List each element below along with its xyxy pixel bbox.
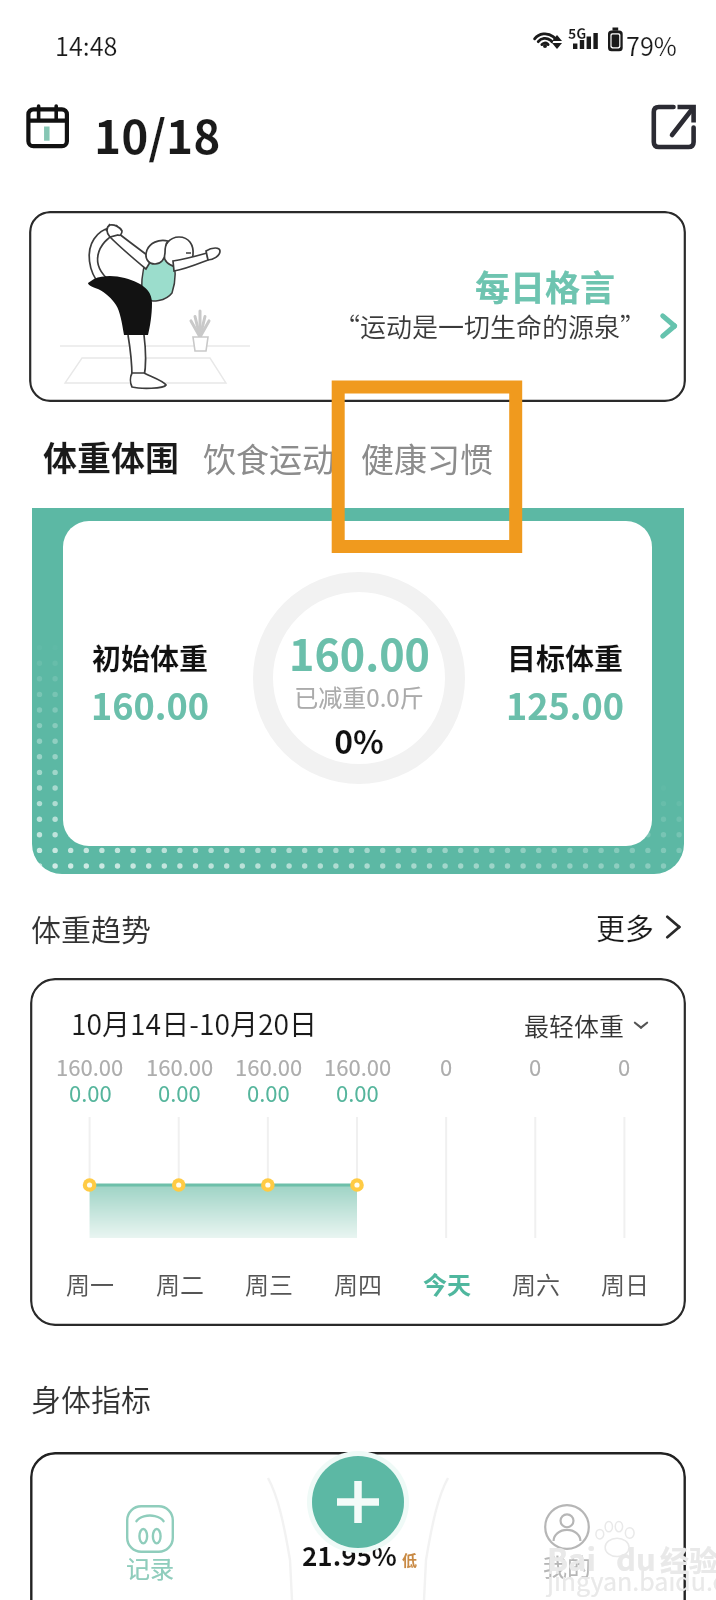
button[interactable]: 记录 xyxy=(126,1505,174,1588)
button[interactable]: 最轻体重 xyxy=(524,1007,649,1043)
staticText: 周一 xyxy=(66,1266,114,1301)
staticText: 10/18 xyxy=(94,101,221,168)
button[interactable]: Profile xyxy=(543,1503,591,1586)
staticText: 低 xyxy=(402,1549,418,1571)
staticText: “运动是一切生命的源泉” xyxy=(334,307,647,345)
staticText: 周三 xyxy=(245,1266,293,1301)
staticText: 身体指标 xyxy=(31,1376,151,1419)
staticText: 体重体围 xyxy=(43,432,179,481)
button[interactable]: Add record xyxy=(312,1456,404,1548)
staticText: 0 xyxy=(529,1050,542,1082)
button[interactable]: Share xyxy=(648,101,700,153)
button[interactable]: 健康习惯 xyxy=(358,434,496,482)
staticText: 目标体重 xyxy=(507,636,624,678)
other: Calendar xyxy=(24,102,70,150)
staticText: 经验 xyxy=(660,1538,716,1580)
staticText: 已减重0.0斤 xyxy=(294,679,424,714)
staticText: 0 xyxy=(440,1050,453,1082)
staticText: 健康习惯 xyxy=(361,434,493,482)
button[interactable]: 每日格言 xyxy=(29,211,686,402)
staticText: 我的 xyxy=(543,1548,591,1583)
staticText: 160.00 xyxy=(289,621,430,683)
staticText: 14:48 xyxy=(55,27,118,63)
staticText: 160.00 xyxy=(324,1050,392,1082)
staticText: 周六 xyxy=(512,1266,560,1301)
staticText: 160.00 xyxy=(146,1050,214,1082)
staticText: 5G xyxy=(568,23,587,43)
staticText: 125.00 xyxy=(506,678,624,730)
button[interactable]: 更多 xyxy=(596,906,686,948)
staticText: 周日 xyxy=(601,1266,649,1301)
staticText: 今天 xyxy=(423,1266,471,1301)
staticText: 21.95% xyxy=(302,1536,397,1574)
staticText: 160.00 xyxy=(56,1050,124,1082)
button[interactable]: 体重体围 xyxy=(40,432,182,481)
staticText: 饮食运动 xyxy=(203,434,335,482)
staticText: 79% xyxy=(626,27,677,63)
staticText: 每日格言 xyxy=(475,260,616,311)
staticText: 0% xyxy=(334,717,384,763)
staticText: 周二 xyxy=(156,1266,204,1301)
staticText: 0.00 xyxy=(158,1076,201,1108)
staticText: 0.00 xyxy=(69,1076,112,1108)
staticText: Bai xyxy=(547,1535,596,1580)
staticText: 160.00 xyxy=(235,1050,303,1082)
staticText: 10月14日-10月20日 xyxy=(71,1003,318,1044)
staticText: 0 xyxy=(618,1050,631,1082)
staticText: 记录 xyxy=(126,1550,174,1585)
staticText: 0.00 xyxy=(247,1076,290,1108)
staticText: 初始体重 xyxy=(92,636,209,678)
staticText: du xyxy=(616,1535,656,1580)
staticText: 160.00 xyxy=(91,678,209,730)
staticText: 最轻体重 xyxy=(524,1007,625,1043)
staticText: 体重趋势 xyxy=(31,906,151,949)
staticText: 0.00 xyxy=(336,1076,379,1108)
button[interactable]: 饮食运动 xyxy=(200,434,338,482)
staticText: 更多 xyxy=(596,906,655,948)
other: Profile xyxy=(543,1503,591,1551)
staticText: 周四 xyxy=(334,1266,382,1301)
staticText: jingyan.baidu.com xyxy=(547,1562,716,1598)
